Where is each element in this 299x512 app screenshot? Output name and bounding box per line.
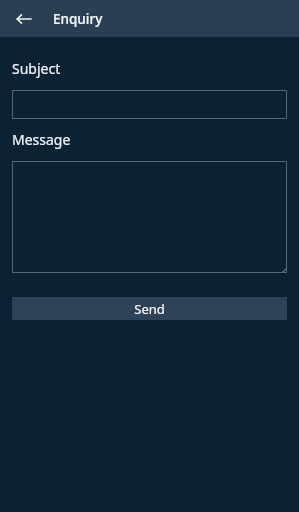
button[interactable]: Send bbox=[12, 297, 287, 320]
button[interactable] bbox=[12, 90, 287, 119]
button[interactable]: Back bbox=[8, 3, 40, 35]
staticText: Message bbox=[12, 130, 71, 149]
staticText: Enquiry bbox=[53, 10, 103, 28]
button[interactable] bbox=[12, 161, 287, 273]
staticText: Send bbox=[134, 300, 165, 318]
staticText: Subject bbox=[12, 59, 61, 78]
